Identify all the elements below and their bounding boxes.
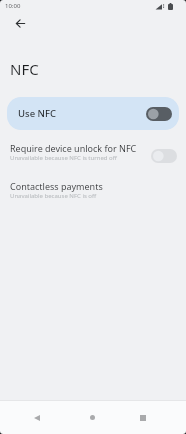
button[interactable] (135, 410, 150, 425)
button[interactable]: Require device unlock for NFC (0, 142, 186, 169)
button[interactable] (11, 14, 29, 32)
button[interactable] (29, 410, 44, 425)
staticText: Use NFC (18, 107, 56, 120)
staticText: NFC (10, 59, 39, 79)
staticText: 10:00 (5, 2, 21, 10)
staticText: Unavailable because NFC is off (10, 192, 97, 200)
button[interactable] (85, 410, 100, 425)
button[interactable]: Use NFC (7, 97, 179, 130)
staticText: Contactless payments (10, 180, 103, 192)
button[interactable]: Contactless payments (0, 180, 186, 200)
staticText: Unavailable because NFC is turned off (10, 154, 117, 162)
staticText: Require device unlock for NFC (10, 142, 137, 154)
